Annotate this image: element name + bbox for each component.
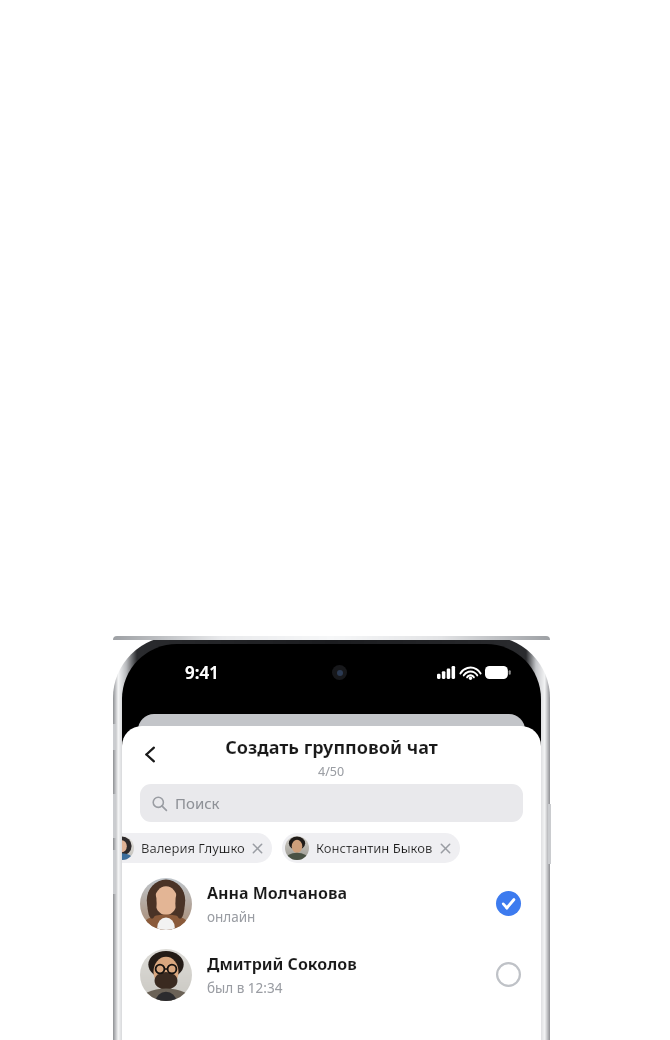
other: Not selected [496, 962, 521, 987]
button[interactable]: Константин Быков [282, 833, 460, 863]
button[interactable]: Валерия Глушко [122, 833, 272, 863]
staticText: Константин Быков [316, 839, 433, 857]
staticText: Валерия Глушко [141, 839, 245, 857]
button[interactable]: Дмитрий Соколов [122, 939, 541, 1010]
other: Remove Константин Быков [440, 843, 451, 854]
button[interactable]: Анна Молчанова [122, 868, 541, 939]
staticText: 4/50 [318, 763, 345, 780]
staticText: Дмитрий Соколов [207, 953, 357, 975]
other: Selected [496, 891, 521, 916]
staticText: Поиск [175, 793, 220, 813]
staticText: был в 12:34 [207, 979, 283, 997]
staticText: Создать групповой чат [225, 735, 438, 760]
staticText: Анна Молчанова [207, 882, 347, 904]
button[interactable]: Поиск [140, 784, 523, 822]
other: Remove Валерия Глушко [252, 843, 263, 854]
staticText: 9:41 [185, 661, 219, 684]
staticText: онлайн [207, 908, 256, 926]
button[interactable]: Back [130, 734, 170, 774]
